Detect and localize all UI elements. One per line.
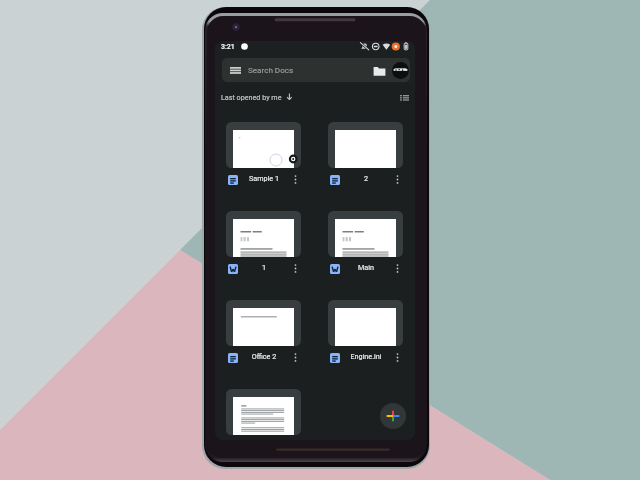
- staticText: Main: [340, 263, 392, 271]
- button[interactable]: More options for Engine.ini: [392, 351, 403, 364]
- staticText: Office 2: [238, 352, 290, 360]
- button[interactable]: 2: [328, 122, 403, 185]
- button[interactable]: Report: [226, 389, 301, 440]
- button[interactable]: More options for Sample 1: [290, 173, 301, 186]
- button[interactable]: Main: [328, 211, 403, 274]
- button[interactable]: Sample 1: [226, 122, 301, 185]
- staticText: 3:21: [221, 43, 235, 51]
- staticText: Sample 1: [238, 174, 290, 182]
- button[interactable]: More options for Main: [392, 262, 403, 275]
- staticText: 1: [238, 263, 290, 271]
- staticText: Last opened by me: [221, 93, 282, 101]
- button[interactable]: Open navigation menu: [222, 58, 410, 82]
- button[interactable]: Create new document: [380, 403, 406, 429]
- button[interactable]: Engine.ini: [328, 300, 403, 363]
- button[interactable]: Office 2: [226, 300, 301, 363]
- staticText: Search Docs: [248, 65, 294, 74]
- staticText: 2: [340, 174, 392, 182]
- other: Open navigation menu: [230, 67, 241, 74]
- staticText: Engine.ini: [340, 352, 392, 360]
- button[interactable]: More options for 2: [392, 173, 403, 186]
- button[interactable]: Account: [392, 62, 409, 79]
- button[interactable]: Last opened by me: [221, 89, 294, 104]
- button[interactable]: Switch to list view: [400, 95, 409, 101]
- button[interactable]: Folders: [373, 66, 386, 77]
- button[interactable]: More options for 1: [290, 262, 301, 275]
- button[interactable]: 1: [226, 211, 301, 274]
- button[interactable]: More options for Office 2: [290, 351, 301, 364]
